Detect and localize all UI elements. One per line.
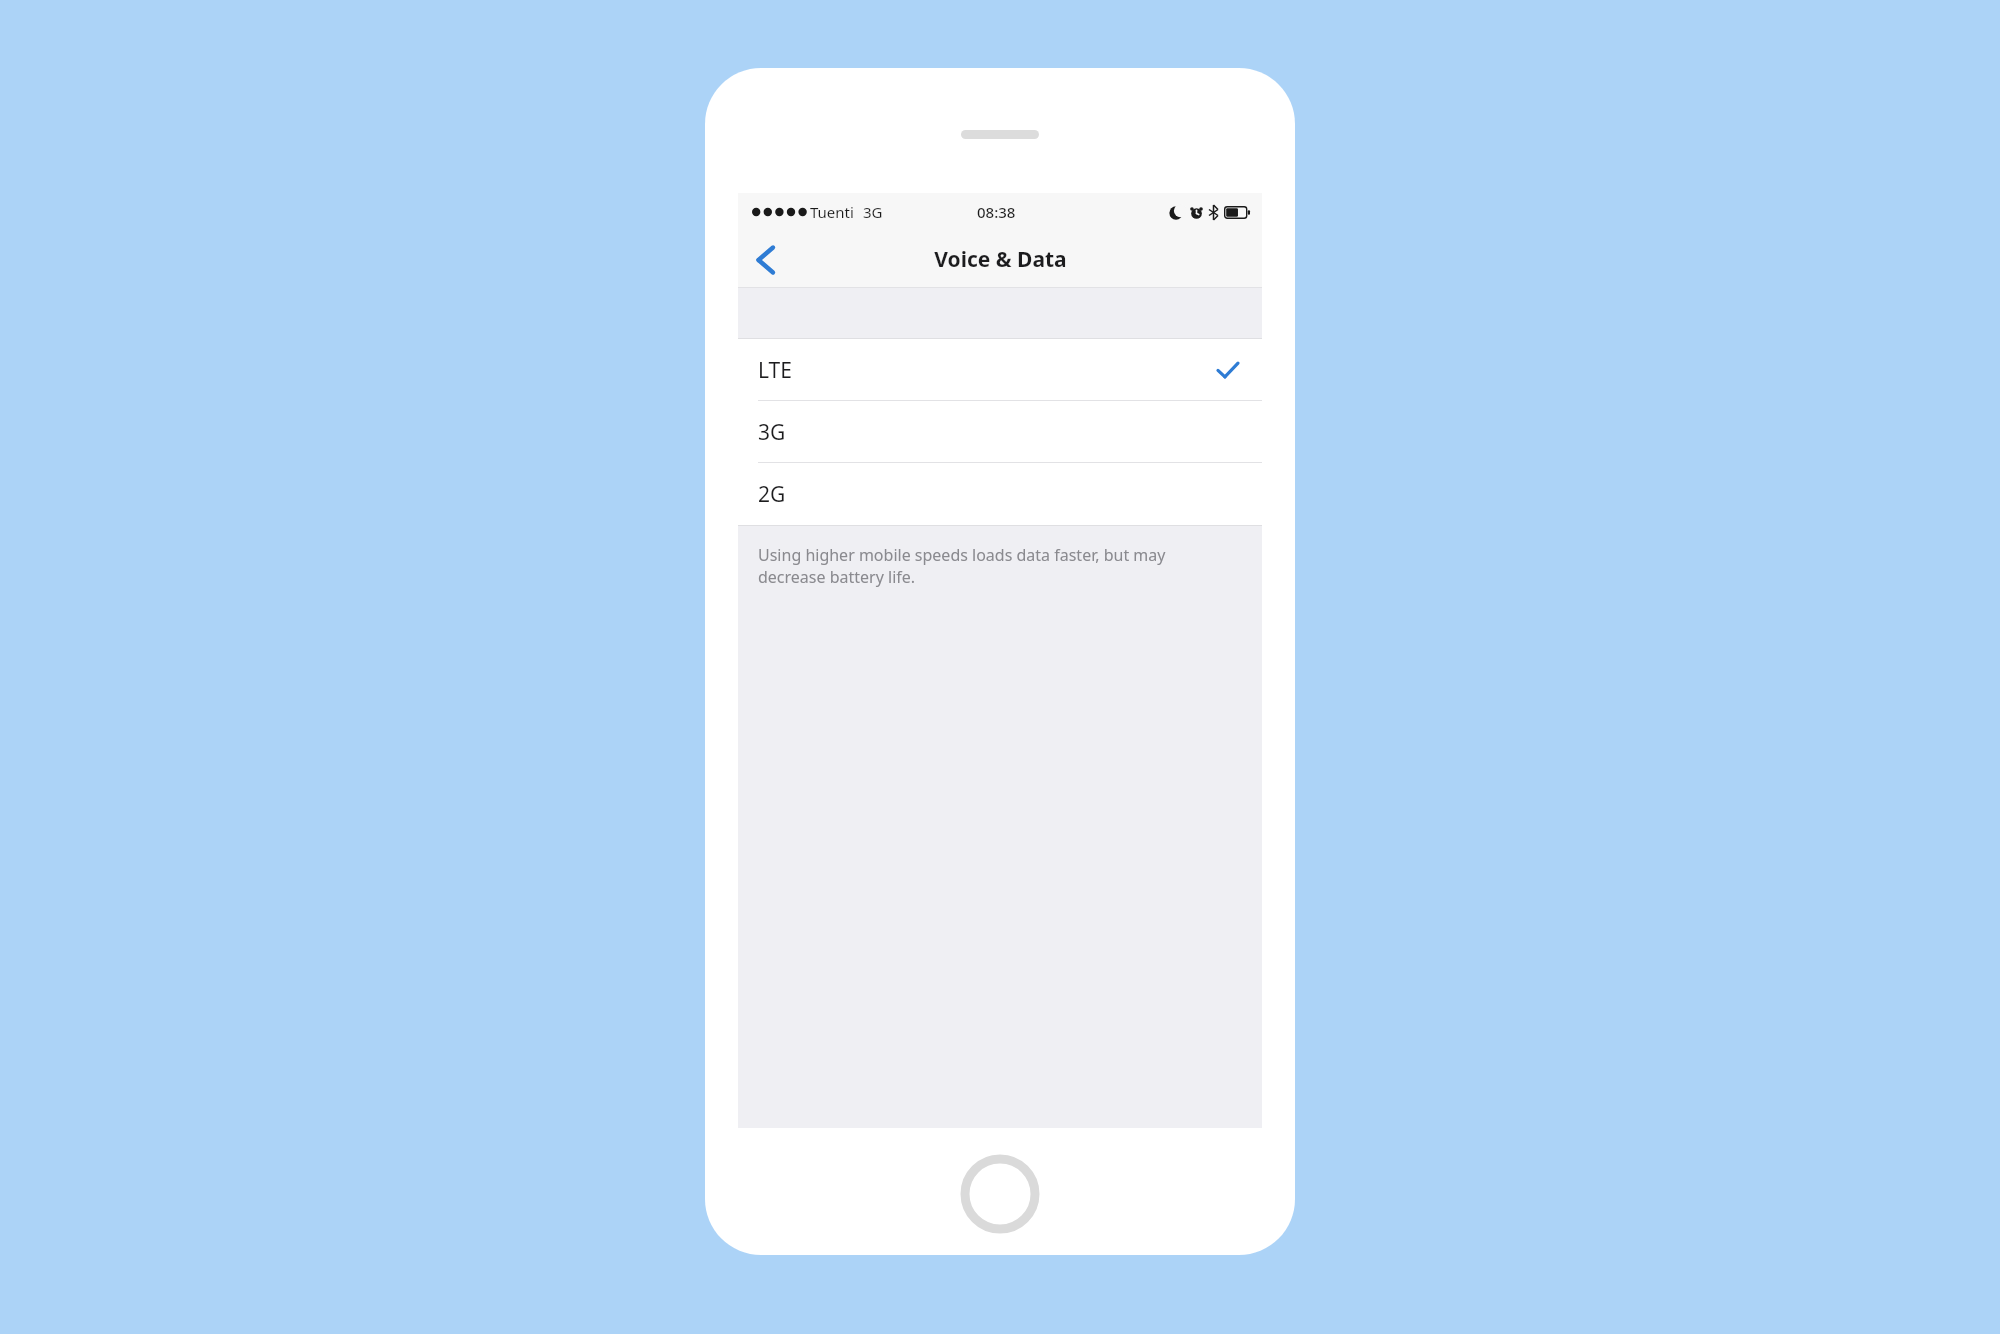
- button[interactable]: 2G: [738, 463, 1262, 525]
- staticText: 08:38: [977, 202, 1016, 222]
- staticText: Tuenti: [810, 202, 854, 222]
- staticText: Voice & Data: [934, 245, 1067, 274]
- button[interactable]: Back: [738, 231, 792, 288]
- staticText: Using higher mobile speeds loads data fa…: [758, 544, 1228, 588]
- staticText: LTE: [758, 356, 792, 385]
- button[interactable]: 3G: [738, 401, 1262, 463]
- staticText: 3G: [758, 418, 786, 447]
- button[interactable]: Home: [960, 1154, 1040, 1234]
- staticText: 2G: [758, 480, 786, 509]
- button[interactable]: LTE: [738, 339, 1262, 401]
- staticText: 3G: [863, 202, 883, 222]
